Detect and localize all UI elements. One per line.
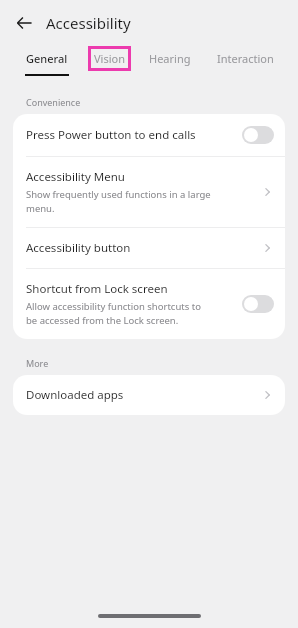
staticText: More: [26, 357, 49, 369]
staticText: Show frequently used functions in a larg…: [26, 188, 211, 215]
staticText: Press Power button to end calls: [26, 127, 196, 143]
button[interactable]: Vision: [88, 46, 131, 71]
button[interactable]: Back: [8, 7, 40, 39]
staticText: Accessibility: [46, 13, 131, 33]
staticText: Vision: [94, 51, 125, 66]
button[interactable]: Toggle off: [242, 126, 274, 144]
button[interactable]: General: [20, 46, 74, 71]
staticText: General: [26, 51, 68, 66]
staticText: Allow accessibility function shortcuts t…: [26, 300, 201, 327]
staticText: Shortcut from Lock screen: [26, 281, 168, 297]
button[interactable]: Toggle off: [242, 295, 274, 313]
button[interactable]: Press Power button to end calls: [13, 114, 285, 156]
button[interactable]: Interaction: [211, 46, 280, 71]
staticText: Accessibility button: [26, 240, 131, 256]
button[interactable]: Accessibility Menu: [13, 157, 285, 227]
staticText: Downloaded apps: [26, 387, 124, 403]
button[interactable]: Hearing: [143, 46, 197, 71]
button[interactable]: Accessibility button: [13, 228, 285, 268]
button[interactable]: Shortcut from Lock screen: [13, 269, 285, 339]
staticText: Interaction: [217, 51, 274, 66]
staticText: Convenience: [26, 96, 81, 108]
button[interactable]: Downloaded apps: [13, 375, 285, 415]
staticText: Hearing: [149, 51, 191, 66]
staticText: Accessibility Menu: [26, 169, 125, 185]
